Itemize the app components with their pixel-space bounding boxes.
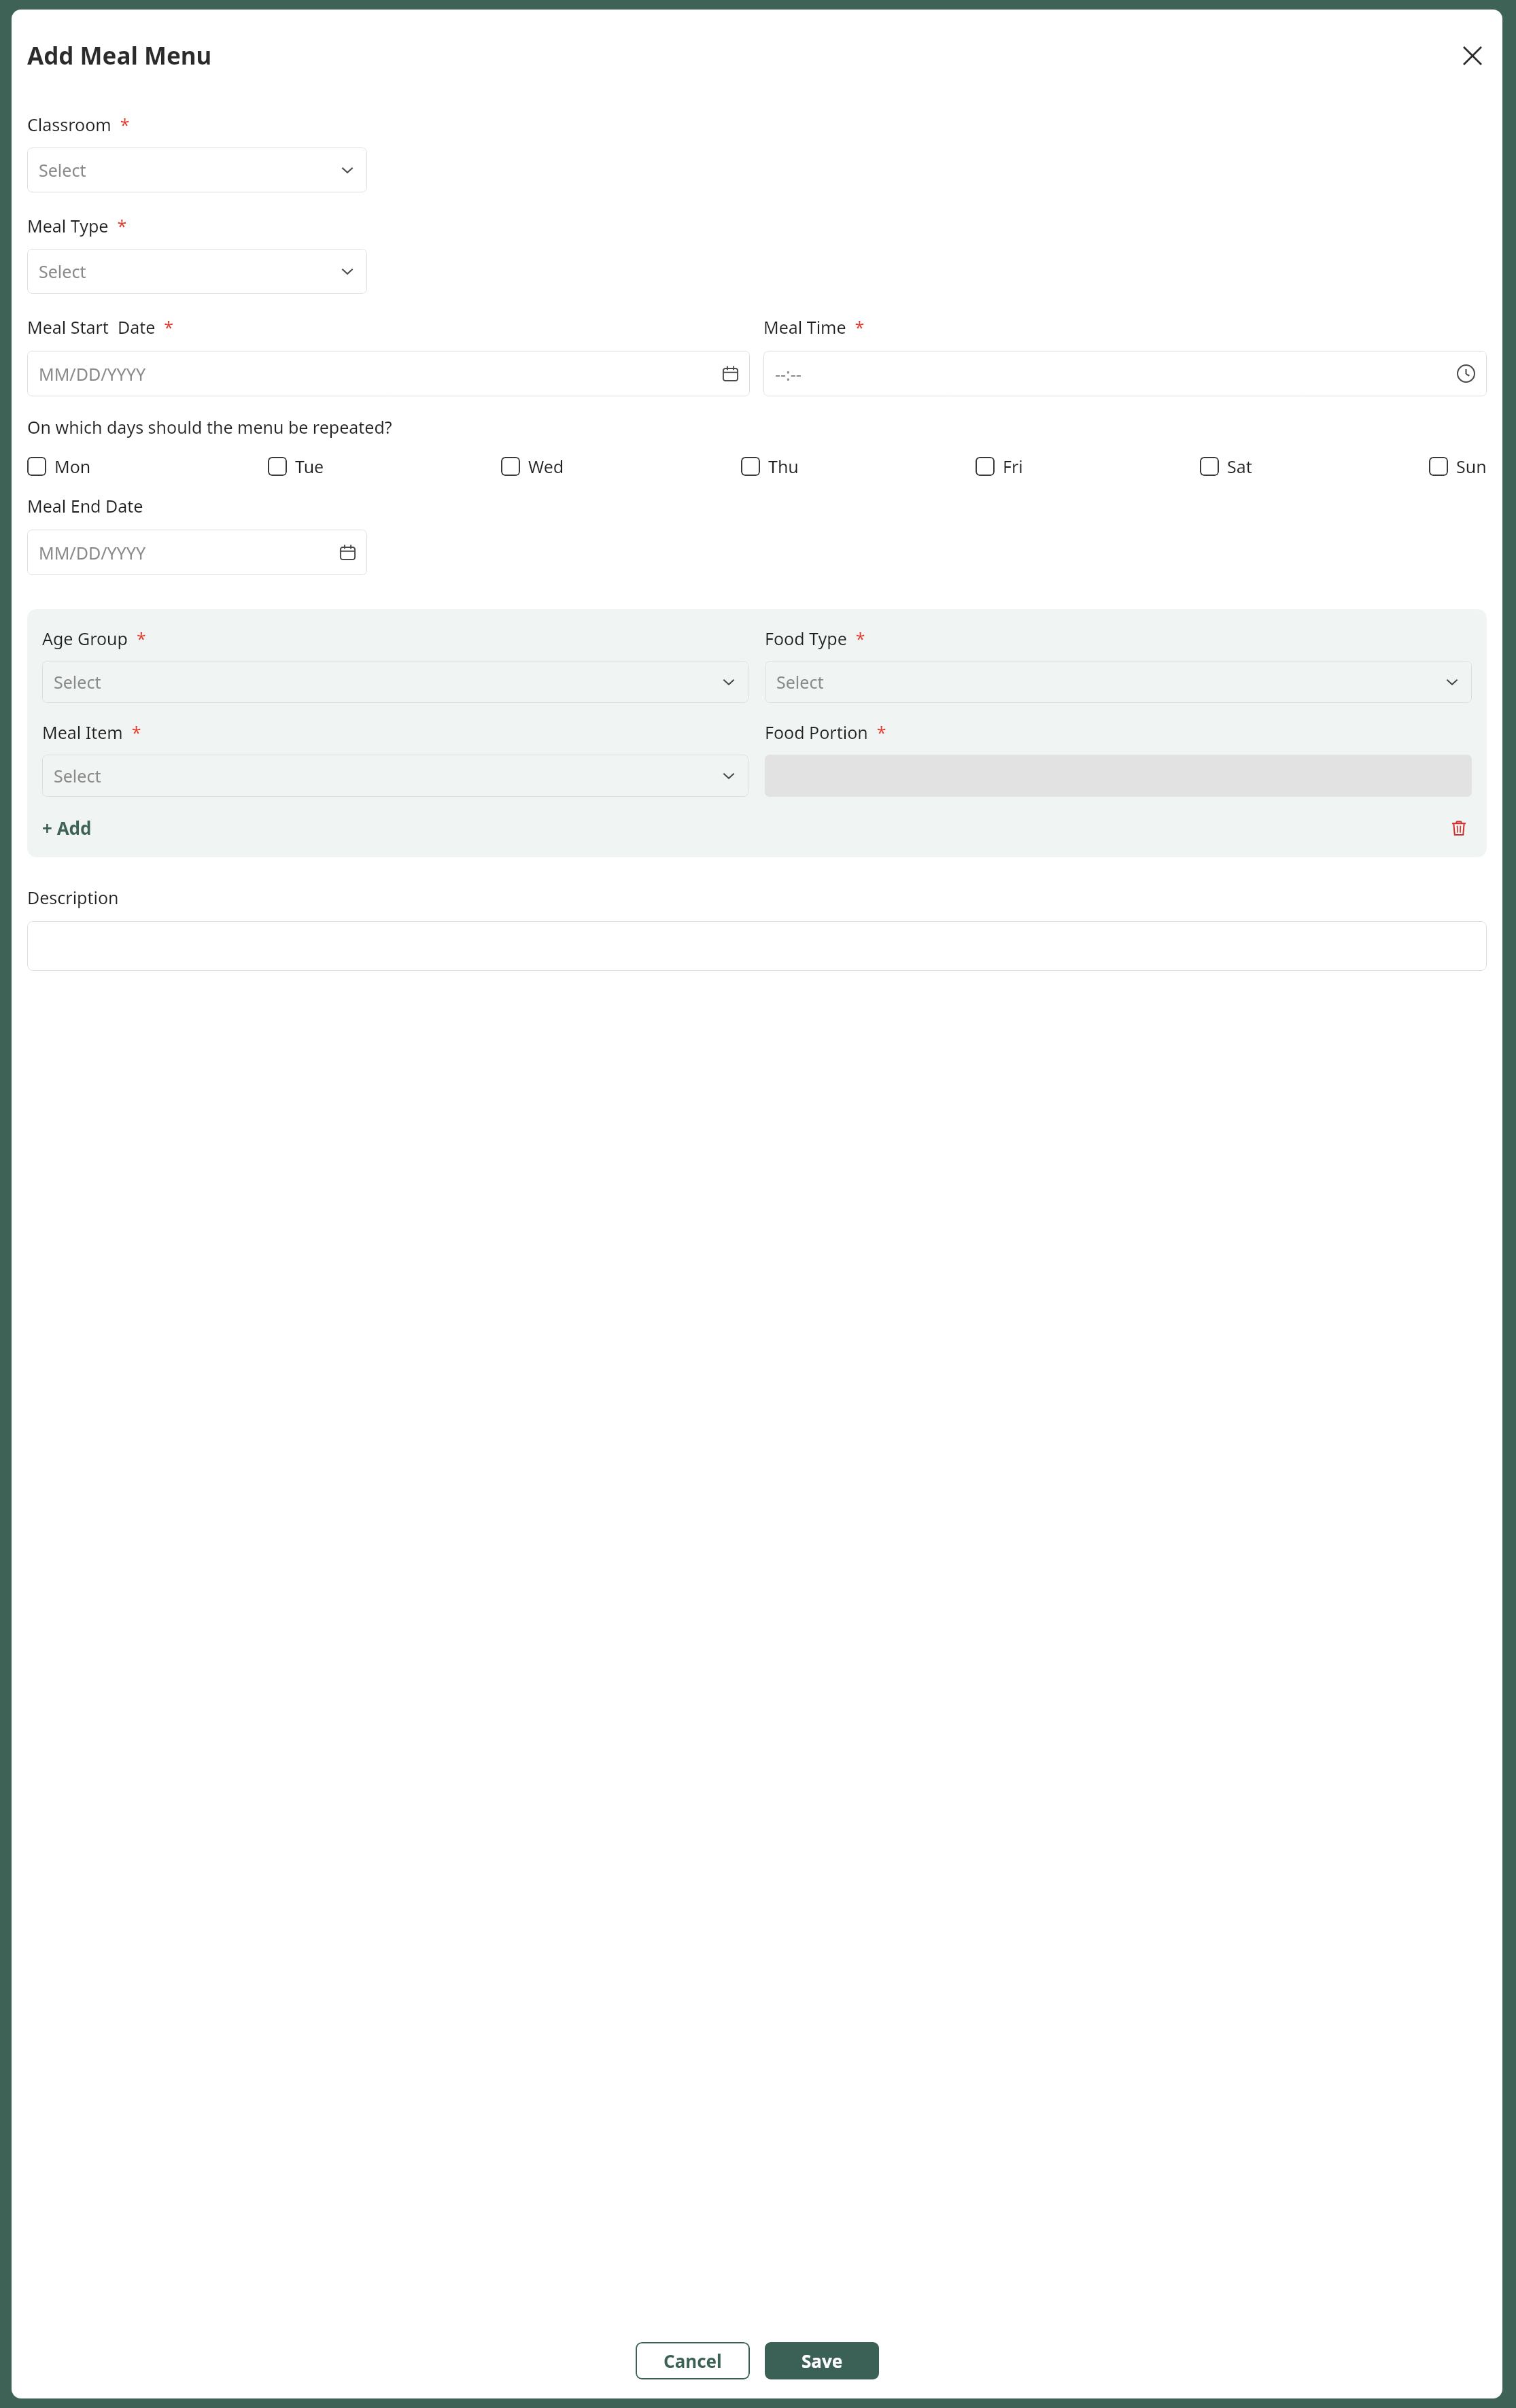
- staticText: Tue: [295, 455, 324, 478]
- button[interactable]: Cancel: [636, 2342, 750, 2379]
- staticText: Age Group *: [42, 627, 146, 650]
- button[interactable]: Sun: [1429, 452, 1487, 481]
- staticText: Food Type *: [765, 627, 865, 650]
- staticText: Wed: [528, 455, 564, 478]
- staticText: Sun: [1456, 455, 1487, 478]
- staticText: Meal End Date: [27, 494, 143, 517]
- button[interactable]: Select: [27, 148, 367, 192]
- button[interactable]: Mon: [27, 452, 91, 481]
- button[interactable]: Save: [765, 2342, 879, 2379]
- button[interactable]: [27, 921, 1487, 971]
- staticText: Select: [54, 670, 101, 693]
- button[interactable]: --:--: [763, 351, 1487, 396]
- button[interactable]: Sat: [1200, 452, 1252, 481]
- staticText: Thu: [768, 455, 799, 478]
- staticText: Meal Time *: [763, 315, 865, 339]
- staticText: On which days should the menu be repeate…: [27, 415, 392, 438]
- staticText: Save: [802, 2349, 843, 2373]
- staticText: Food Portion *: [765, 721, 886, 744]
- staticText: Select: [54, 764, 101, 787]
- staticText: --:--: [775, 362, 802, 385]
- staticText: Meal Type *: [27, 214, 127, 237]
- staticText: Select: [39, 260, 86, 283]
- button[interactable]: Select: [42, 755, 748, 797]
- staticText: Sat: [1227, 455, 1252, 478]
- button[interactable]: Select: [765, 661, 1472, 703]
- staticText: Cancel: [664, 2349, 722, 2373]
- staticText: Select: [39, 158, 86, 182]
- staticText: MM/DD/YYYY: [39, 541, 146, 564]
- button[interactable]: Select: [42, 661, 748, 703]
- button[interactable]: Tue: [268, 452, 324, 481]
- button[interactable]: Delete: [1446, 815, 1472, 841]
- staticText: Description: [27, 886, 119, 909]
- staticText: Classroom *: [27, 113, 130, 136]
- button[interactable]: Thu: [741, 452, 799, 481]
- staticText: + Add: [42, 816, 92, 840]
- staticText: Fri: [1003, 455, 1023, 478]
- button[interactable]: + Add: [42, 812, 92, 844]
- button[interactable]: MM/DD/YYYY: [27, 351, 750, 396]
- button[interactable]: MM/DD/YYYY: [27, 530, 367, 575]
- button[interactable]: Close: [1458, 41, 1487, 70]
- button[interactable]: Fri: [976, 452, 1023, 481]
- staticText: Add Meal Menu: [27, 39, 212, 72]
- staticText: MM/DD/YYYY: [39, 362, 146, 385]
- staticText: Mon: [54, 455, 91, 478]
- staticText: Select: [776, 670, 824, 693]
- button[interactable]: Wed: [501, 452, 564, 481]
- staticText: Meal Start Date *: [27, 315, 174, 339]
- button[interactable]: Select: [27, 249, 367, 294]
- staticText: Meal Item *: [42, 721, 141, 744]
